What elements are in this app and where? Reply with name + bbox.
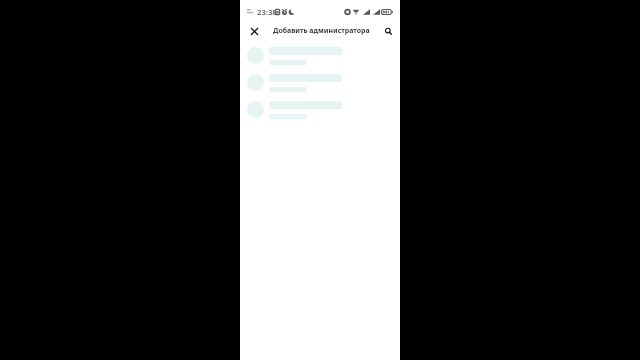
staticText: 23:38 [257,7,277,17]
button[interactable]: Поиск [382,25,395,38]
button[interactable]: Закрыть [248,25,261,38]
button[interactable] [240,69,400,96]
staticText: Добавить администратора [273,26,370,35]
button[interactable] [240,96,400,123]
button[interactable] [240,42,400,69]
